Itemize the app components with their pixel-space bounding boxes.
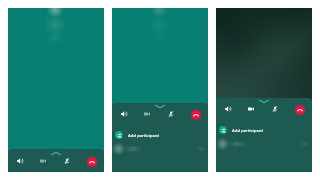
staticText: Add participant xyxy=(232,127,264,133)
staticText: Add participant xyxy=(128,132,160,138)
button[interactable]: Add participant xyxy=(115,128,208,142)
button[interactable]: Turn on video xyxy=(140,107,154,121)
button[interactable]: Speaker xyxy=(221,102,235,116)
button[interactable]: Speaker xyxy=(117,107,131,121)
button[interactable]: End call xyxy=(87,157,97,167)
button[interactable]: Turn off video xyxy=(244,102,258,116)
button[interactable]: Unmute microphone xyxy=(60,154,74,168)
button[interactable]: End call xyxy=(295,105,305,115)
button[interactable]: End call xyxy=(191,110,201,120)
button[interactable]: Unmute microphone xyxy=(268,102,282,116)
button[interactable]: Unmute microphone xyxy=(164,107,178,121)
button[interactable]: Turn on video xyxy=(36,154,50,168)
button[interactable]: Add participant xyxy=(219,123,312,137)
button[interactable]: Speaker xyxy=(13,154,27,168)
